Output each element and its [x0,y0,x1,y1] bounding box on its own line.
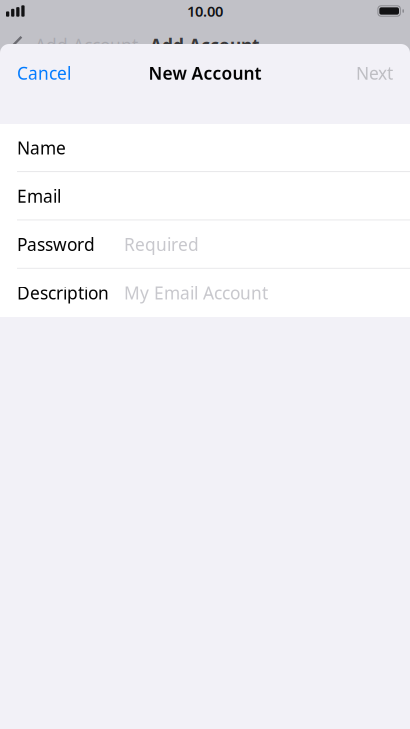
staticText: New Account [148,61,261,84]
staticText: Name [17,136,66,159]
button[interactable]: Cancel [0,50,110,96]
staticText: Required [124,233,199,256]
staticText: Cancel [17,61,71,84]
button[interactable]: Name [0,124,410,172]
staticText: Description [17,281,109,304]
staticText: Next [356,61,393,84]
button[interactable]: Back to Add Account [0,22,138,68]
staticText: Add Account [150,33,260,56]
button[interactable]: Description [0,269,410,317]
staticText: 10.00 [187,1,223,21]
staticText: Password [17,233,95,256]
staticText: Add Account [35,33,138,56]
button[interactable]: Email [0,172,410,220]
staticText: Email [17,184,61,207]
staticText: My Email Account [124,281,268,304]
button[interactable]: Password [0,220,410,269]
button[interactable]: Next [300,50,410,96]
